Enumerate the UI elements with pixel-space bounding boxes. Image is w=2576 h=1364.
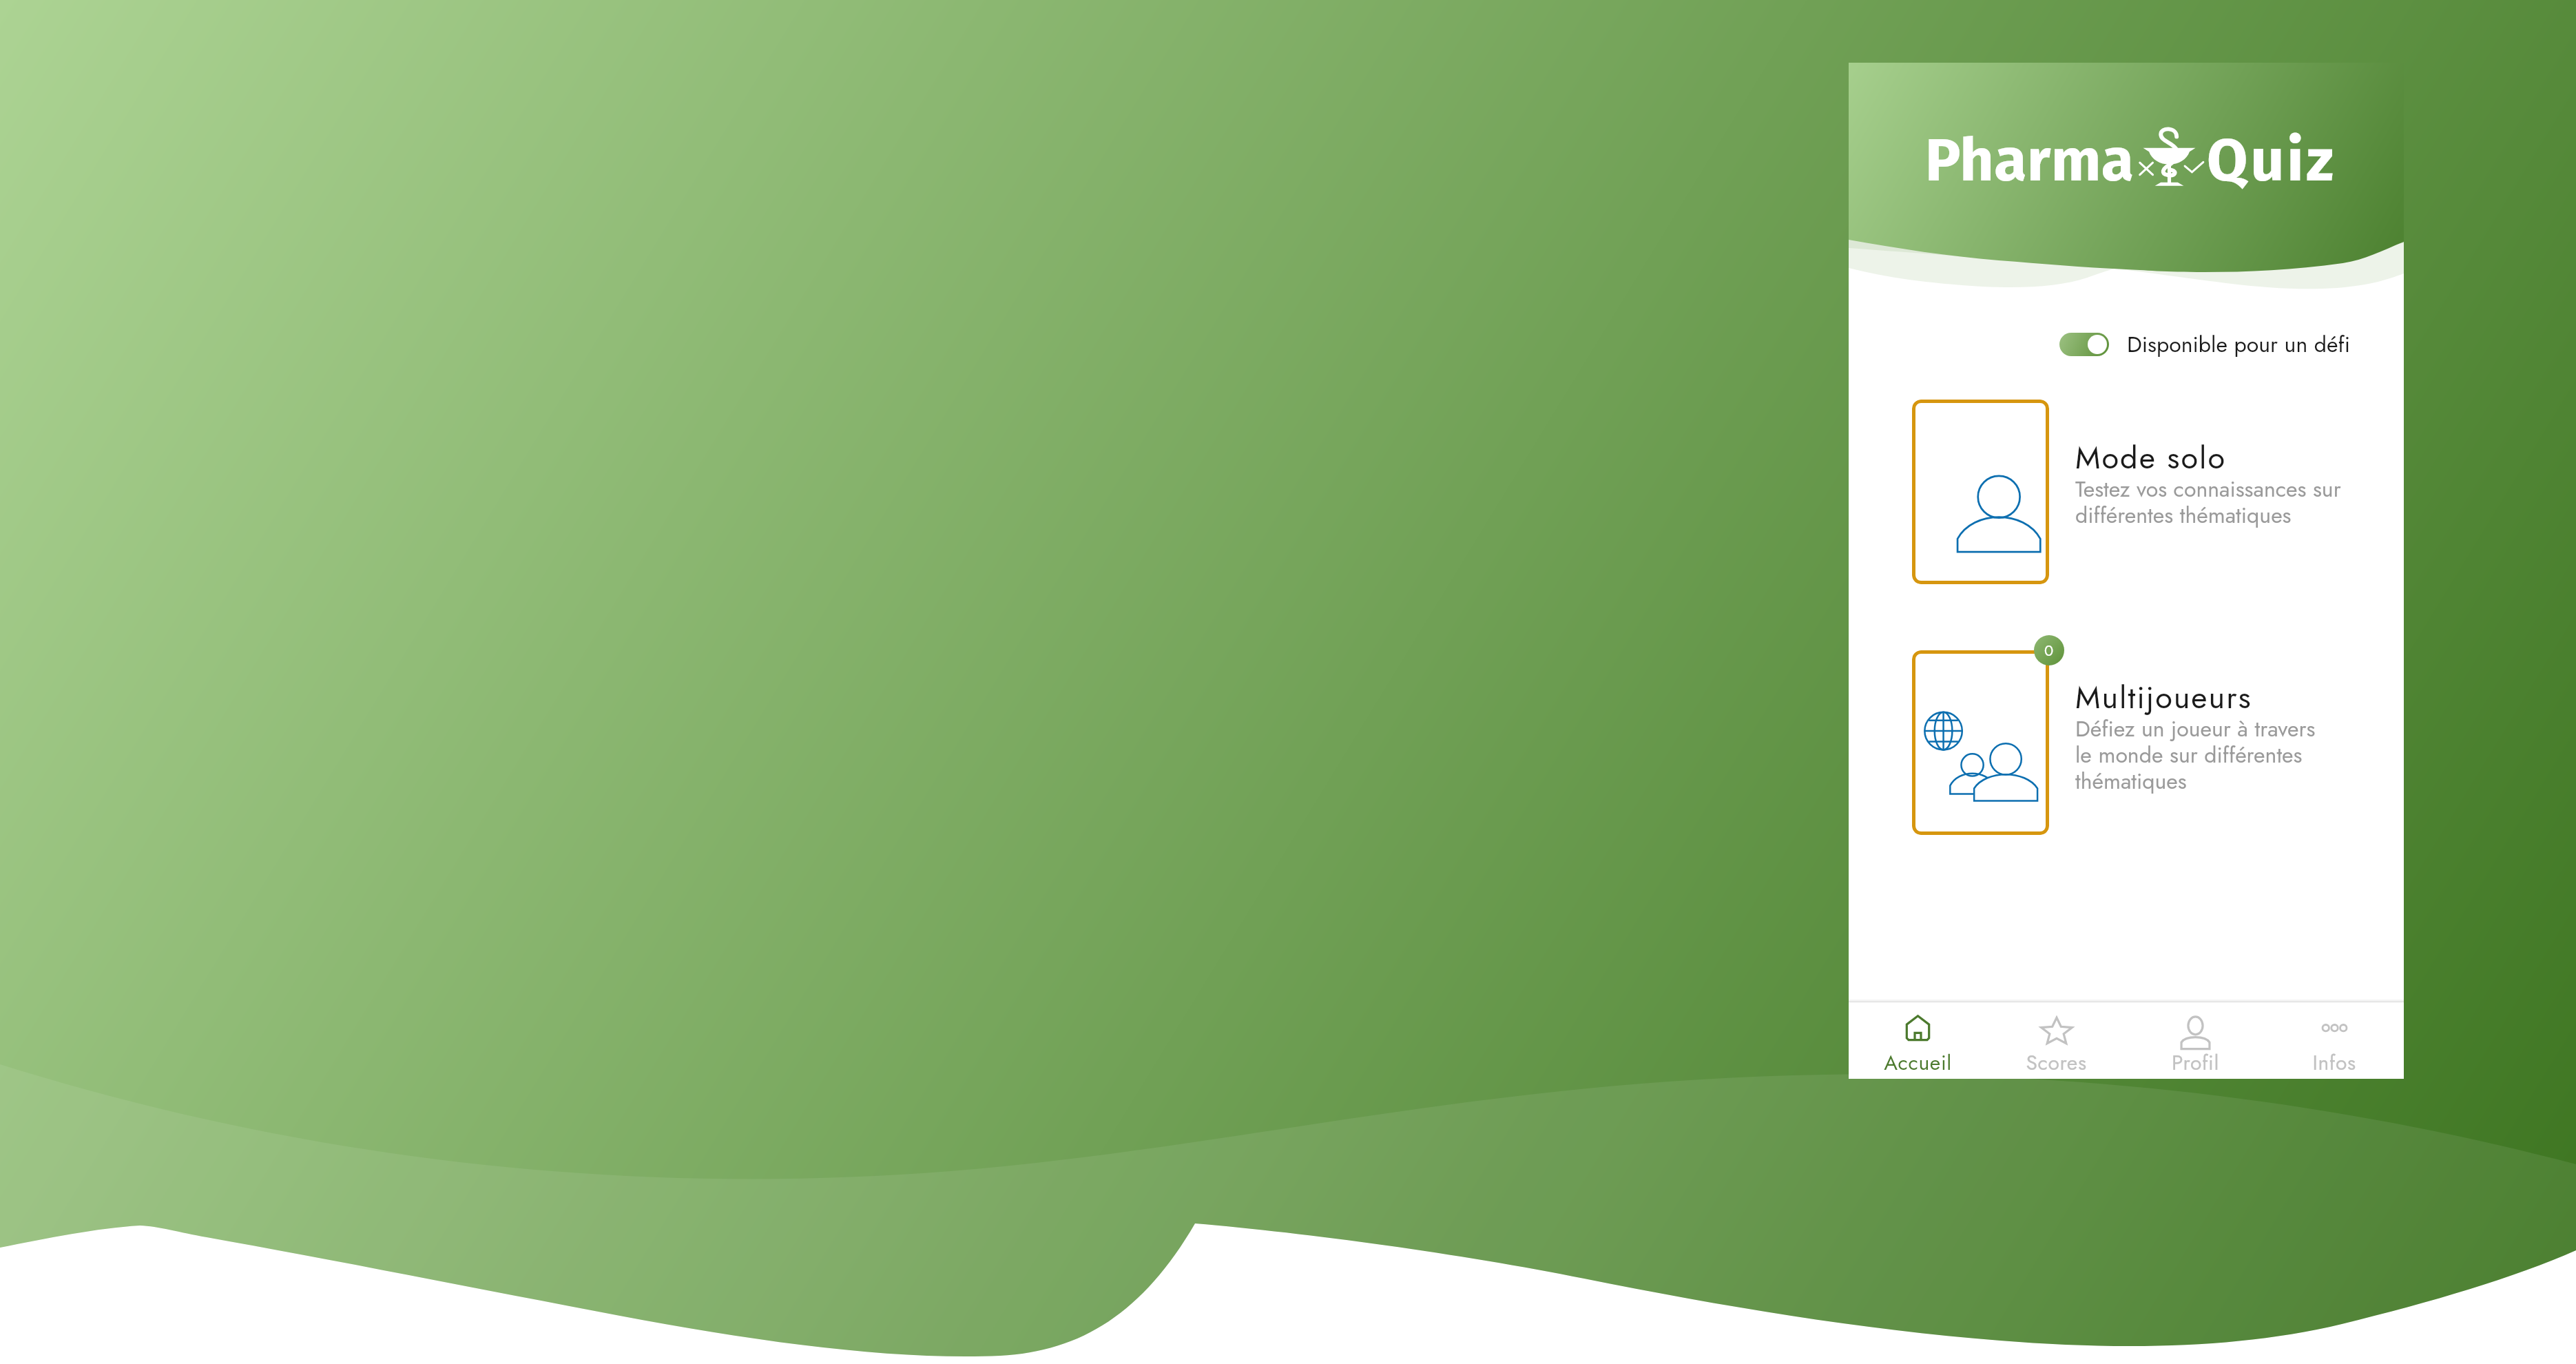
staticText: Multijoueurs	[2075, 675, 2252, 720]
staticText: Défiez un joueur à travers le monde sur …	[2075, 713, 2316, 797]
staticText: Profil	[2172, 1048, 2219, 1077]
staticText: Infos	[2312, 1048, 2356, 1077]
button[interactable]: Accueil	[1849, 1002, 1987, 1079]
staticText: 0	[2044, 639, 2054, 661]
button[interactable]: 0	[1912, 650, 2404, 835]
button[interactable]: Infos	[2265, 1002, 2404, 1079]
button[interactable]: Profil	[2126, 1002, 2265, 1079]
button[interactable]: Scores	[1987, 1002, 2126, 1079]
staticText: Quiz	[2207, 125, 2336, 196]
staticText: Pharma	[1925, 125, 2134, 196]
staticText: Accueil	[1884, 1048, 1952, 1077]
button[interactable]: Disponible pour un défi	[2059, 333, 2109, 356]
staticText: Disponible pour un défi	[2127, 329, 2350, 360]
staticText: Mode solo	[2075, 435, 2226, 480]
staticText: Scores	[2026, 1048, 2087, 1077]
button[interactable]: Mode solo	[1912, 400, 2404, 584]
staticText: Testez vos connaissances sur différentes…	[2075, 473, 2341, 531]
